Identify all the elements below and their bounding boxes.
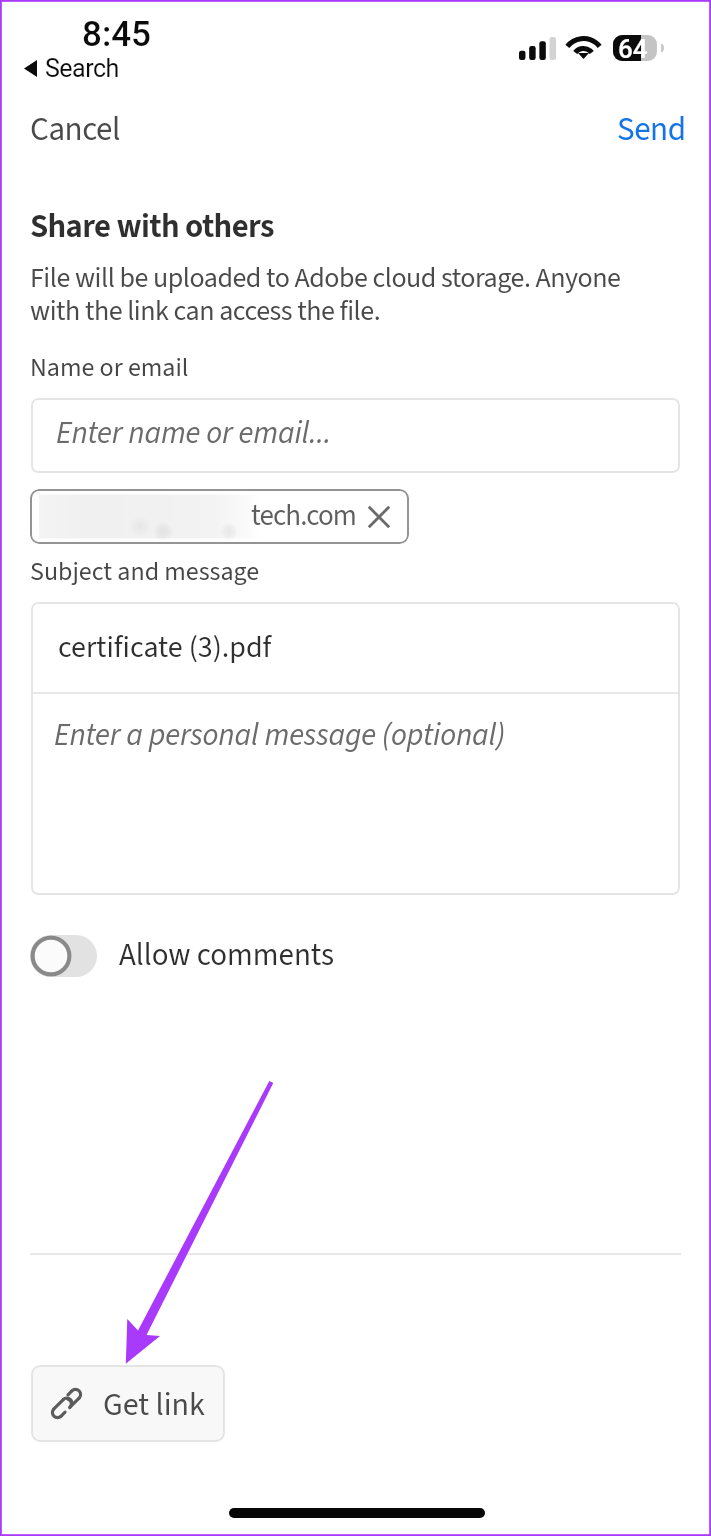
staticText: 64: [618, 34, 648, 60]
staticText: certificate (3).pdf: [58, 626, 272, 669]
staticText: Subject and message: [30, 553, 260, 590]
staticText: Enter name or email...: [56, 411, 332, 455]
staticText: 8:45: [82, 14, 151, 55]
staticText: Allow comments: [119, 933, 334, 977]
staticText: Cancel: [30, 106, 120, 153]
button[interactable]: Remove recipient: [362, 500, 396, 534]
staticText: File will be uploaded to Adobe cloud sto…: [30, 258, 621, 331]
button[interactable]: Send: [601, 94, 702, 165]
staticText: Name or email: [30, 349, 189, 386]
button[interactable]: Enter a personal message (optional): [31, 694, 680, 895]
button[interactable]: Cancel: [14, 94, 136, 165]
staticText: Search: [45, 54, 119, 83]
button[interactable]: Get link: [31, 1365, 225, 1442]
staticText: Share with others: [30, 203, 274, 250]
button[interactable]: Allow comments: [30, 934, 334, 978]
staticText: Get link: [103, 1382, 205, 1428]
button[interactable]: certificate (3).pdf: [31, 602, 680, 692]
staticText: Send: [617, 106, 686, 153]
staticText: tech.com: [251, 495, 356, 536]
button[interactable]: Enter name or email...: [31, 398, 680, 473]
staticText: Enter a personal message (optional): [54, 713, 506, 757]
